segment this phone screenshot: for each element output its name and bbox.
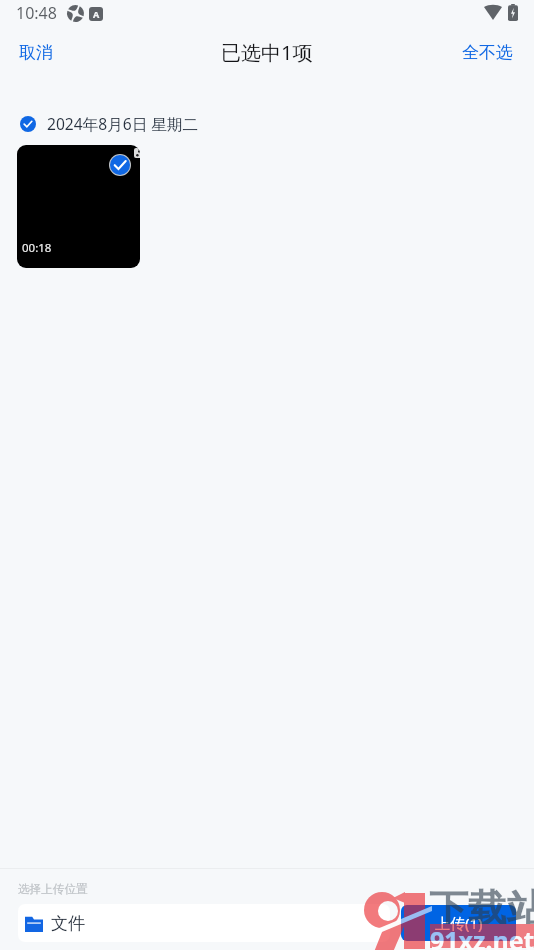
staticText: 00:18 <box>22 240 52 256</box>
button[interactable]: 00:18 <box>17 145 140 268</box>
staticText: 10:48 <box>16 2 57 24</box>
staticText: 91xz.net <box>430 923 534 950</box>
staticText: 文件 <box>51 913 85 934</box>
staticText: 选择上传位置 <box>18 882 88 897</box>
staticText: 上传(1) <box>435 913 483 933</box>
staticText: 2024年8月6日 星期二 <box>47 113 199 134</box>
button[interactable]: 全不选 <box>441 33 534 72</box>
button[interactable]: 取消 <box>0 33 72 72</box>
button[interactable]: 文件 <box>18 904 390 942</box>
staticText: 已选中1项 <box>221 39 313 66</box>
staticText: A <box>93 8 100 20</box>
staticText: 下载站 <box>429 884 534 933</box>
staticText: 取消 <box>19 42 53 63</box>
button[interactable]: 上传(1) <box>401 905 516 941</box>
staticText: 全不选 <box>462 42 513 63</box>
